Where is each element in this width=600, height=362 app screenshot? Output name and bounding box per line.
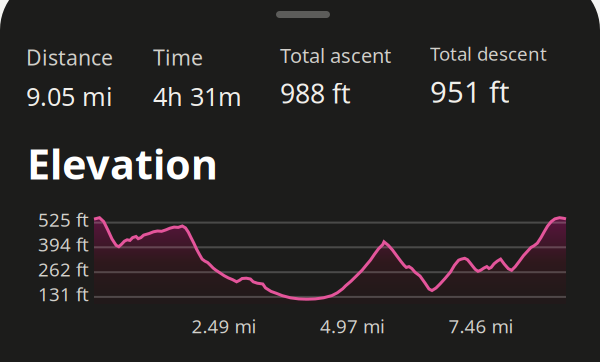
staticText: 262 ft <box>38 257 89 282</box>
button[interactable]: Resize sheet <box>266 1 340 28</box>
staticText: 525 ft <box>38 207 89 232</box>
staticText: Time <box>153 43 203 71</box>
staticText: 988 ft <box>280 76 351 111</box>
staticText: 4h 31m <box>153 79 242 113</box>
staticText: Total ascent <box>280 42 391 69</box>
staticText: 394 ft <box>38 232 89 257</box>
staticText: 4.97 mi <box>320 314 385 338</box>
staticText: Distance <box>26 43 113 71</box>
staticText: Total descent <box>430 41 547 66</box>
staticText: 131 ft <box>38 281 89 306</box>
staticText: 9.05 mi <box>26 79 113 113</box>
staticText: 951 ft <box>430 72 510 111</box>
staticText: 7.46 mi <box>448 314 513 338</box>
staticText: 2.49 mi <box>191 314 256 338</box>
staticText: Elevation <box>27 136 218 191</box>
